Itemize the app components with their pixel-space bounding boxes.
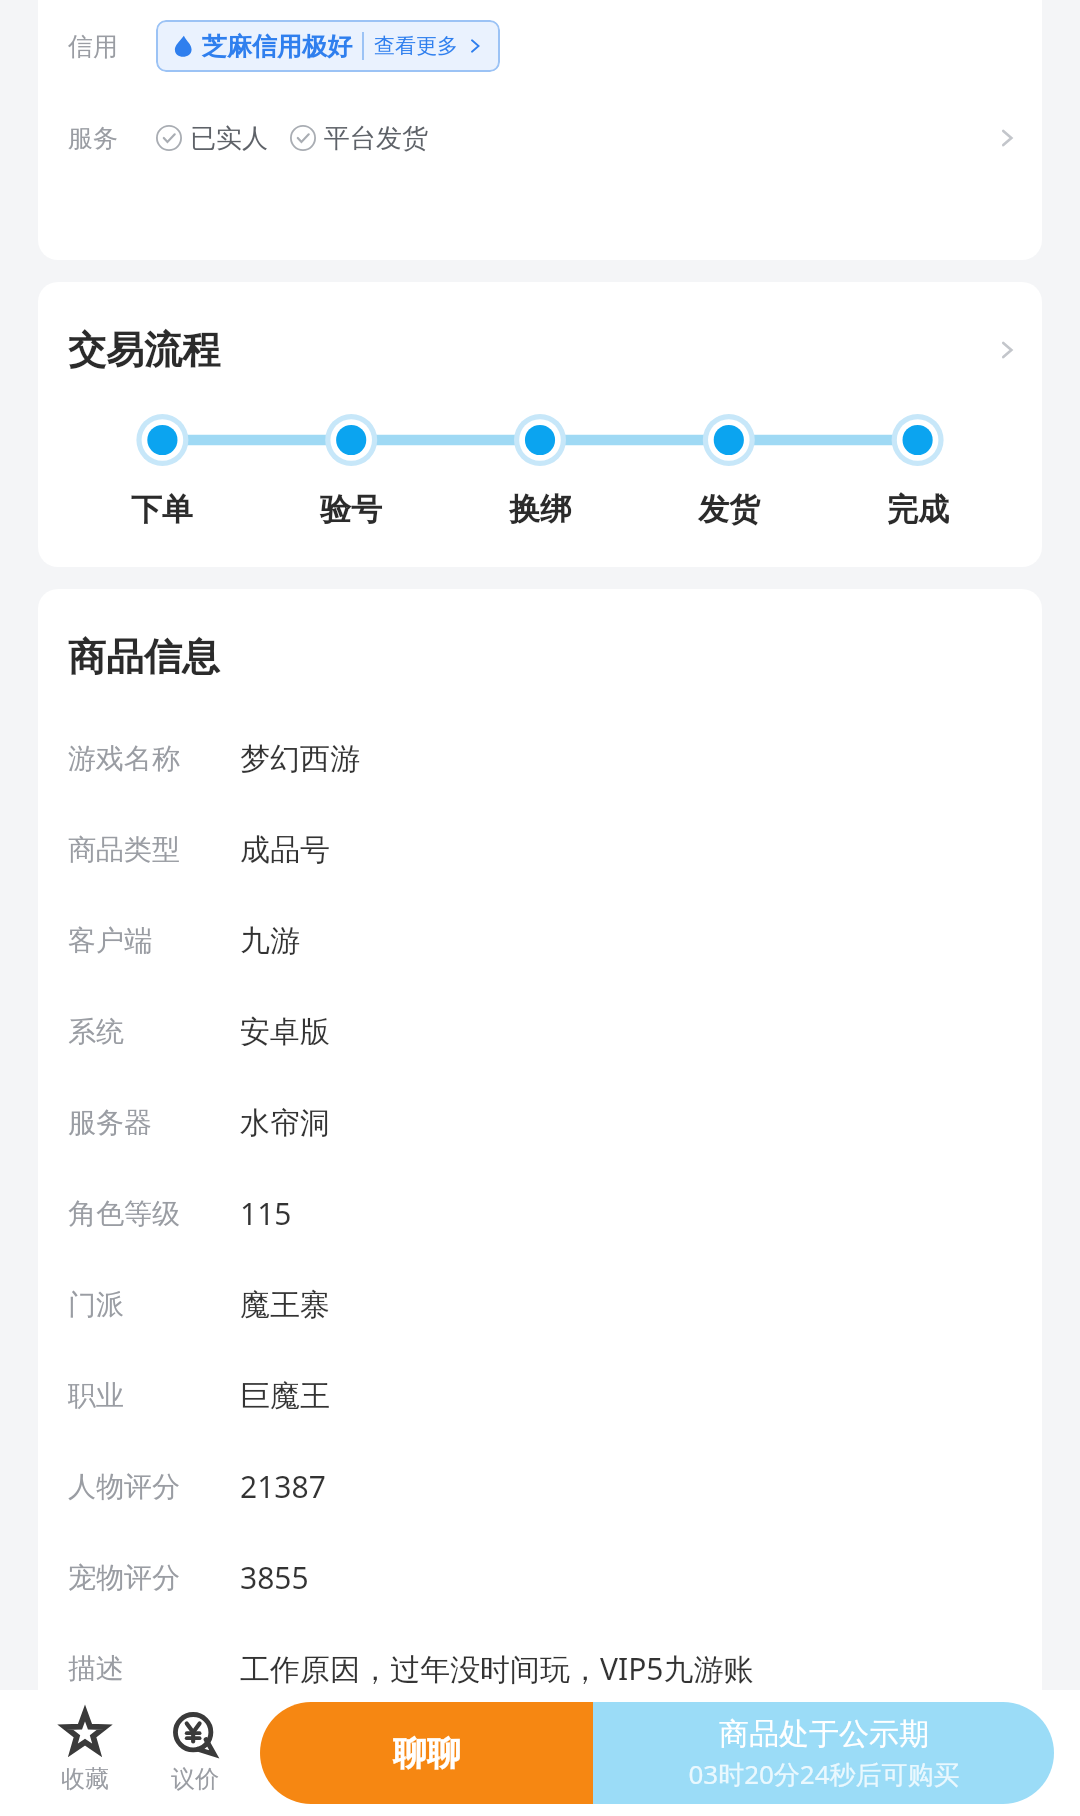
button[interactable]: 芝麻信用极好 <box>156 20 500 72</box>
button[interactable]: 收藏 <box>30 1690 140 1816</box>
staticText: 水帘洞 <box>240 1104 330 1142</box>
staticText: 下单 <box>131 490 193 529</box>
button[interactable]: 服务 <box>38 92 1042 184</box>
staticText: 21387 <box>240 1466 326 1507</box>
staticText: 梦幻西游 <box>240 740 360 778</box>
staticText: 客户端 <box>68 923 152 958</box>
staticText: 商品信息 <box>68 633 220 681</box>
staticText: 系统 <box>68 1014 124 1049</box>
staticText: 议价 <box>171 1764 219 1794</box>
staticText: 服务 <box>68 123 118 154</box>
staticText: 游戏名称 <box>68 741 180 776</box>
staticText: 商品处于公示期 <box>719 1715 929 1753</box>
staticText: 交易流程 <box>68 326 220 374</box>
staticText: 收藏 <box>61 1764 109 1794</box>
staticText: 115 <box>240 1193 292 1234</box>
staticText: 查看更多 <box>374 33 458 59</box>
staticText: 信用 <box>68 31 118 62</box>
staticText: 完成 <box>887 490 949 529</box>
staticText: 平台发货 <box>324 122 428 155</box>
button[interactable]: 商品处于公示期 <box>593 1702 1054 1804</box>
staticText: 芝麻信用极好 <box>202 31 352 62</box>
staticText: 人物评分 <box>68 1469 180 1504</box>
staticText: 商品类型 <box>68 832 180 867</box>
button[interactable]: 交易流程 <box>38 282 1042 567</box>
staticText: 03时20分24秒后可购买 <box>688 1756 960 1792</box>
staticText: 描述 <box>68 1651 124 1686</box>
staticText: 服务器 <box>68 1105 152 1140</box>
staticText: 九游 <box>240 922 300 960</box>
staticText: 宠物评分 <box>68 1560 180 1595</box>
button[interactable]: 聊聊 <box>260 1702 593 1804</box>
staticText: 已实人 <box>190 122 268 155</box>
staticText: 安卓版 <box>240 1013 330 1051</box>
staticText: 换绑 <box>509 490 571 529</box>
button[interactable]: 议价 <box>140 1690 250 1816</box>
staticText: 验号 <box>320 490 382 529</box>
staticText: 角色等级 <box>68 1196 180 1231</box>
staticText: 成品号 <box>240 831 330 869</box>
staticText: 职业 <box>68 1378 124 1413</box>
staticText: 门派 <box>68 1287 124 1322</box>
staticText: 魔王寨 <box>240 1286 330 1324</box>
staticText: 发货 <box>698 490 760 529</box>
staticText: 巨魔王 <box>240 1377 330 1415</box>
staticText: 聊聊 <box>393 1732 461 1775</box>
staticText: 工作原因，过年没时间玩，VIP5九游账 <box>240 1648 754 1689</box>
staticText: 3855 <box>240 1557 309 1598</box>
